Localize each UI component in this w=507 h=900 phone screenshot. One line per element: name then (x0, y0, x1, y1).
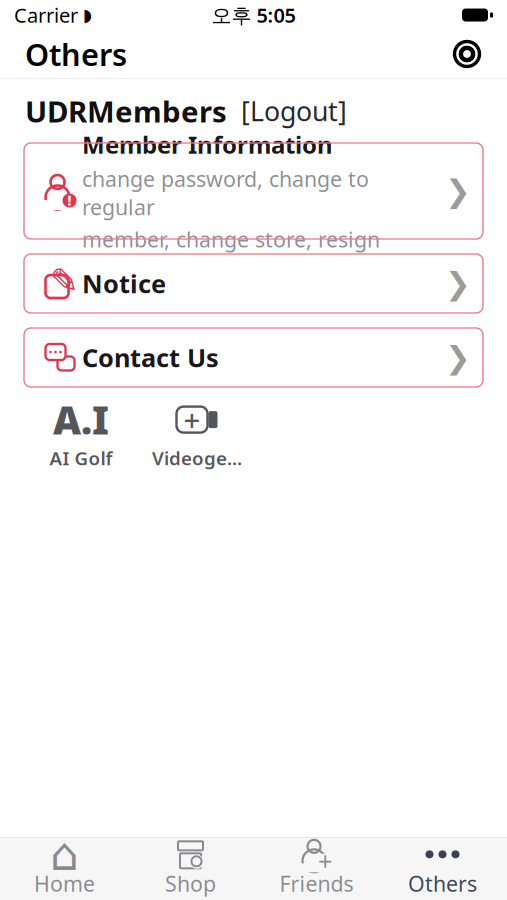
staticText: ✎ (50, 261, 79, 301)
staticText: AI Golf (49, 446, 112, 470)
staticText: Contact Us (82, 341, 219, 374)
staticText: + (183, 400, 200, 439)
staticText: [Logout] (241, 93, 347, 129)
staticText: Others (25, 34, 127, 74)
staticText: ❯ (445, 340, 471, 375)
staticText: Notice (82, 267, 166, 300)
staticText: Carrier (14, 2, 78, 28)
staticText: ! (67, 192, 71, 209)
staticText: + (318, 844, 332, 878)
button[interactable]: ⌂ (1, 838, 127, 900)
button[interactable]: Others (379, 838, 505, 900)
button[interactable]: + (147, 399, 247, 473)
staticText: 오후 5:05 (211, 2, 295, 28)
staticText: member, change store, resign (82, 225, 380, 253)
button[interactable]: ! (24, 143, 483, 239)
staticText: Home (34, 869, 95, 898)
staticText: ❯ (445, 174, 471, 208)
button[interactable]: ✎ (24, 254, 483, 313)
button[interactable]: Settings (443, 30, 491, 78)
button[interactable]: [Logout] (241, 93, 347, 129)
staticText: ⌂ (50, 829, 79, 880)
staticText: UDRMembers (25, 91, 227, 130)
staticText: Videoge... (152, 446, 242, 470)
button[interactable]: + (253, 838, 379, 900)
button[interactable]: Shop (127, 838, 253, 900)
staticText: Shop (165, 869, 216, 898)
staticText: Others (408, 869, 477, 898)
staticText: Member Information (82, 129, 333, 160)
button[interactable]: A.I (31, 399, 131, 473)
staticText: change password, change to regular (82, 164, 369, 221)
staticText: ❯ (445, 266, 471, 301)
staticText: Friends (279, 869, 353, 898)
button[interactable]: Contact Us (24, 328, 483, 387)
staticText: ◗ (83, 5, 92, 25)
staticText: A.I (53, 394, 109, 445)
